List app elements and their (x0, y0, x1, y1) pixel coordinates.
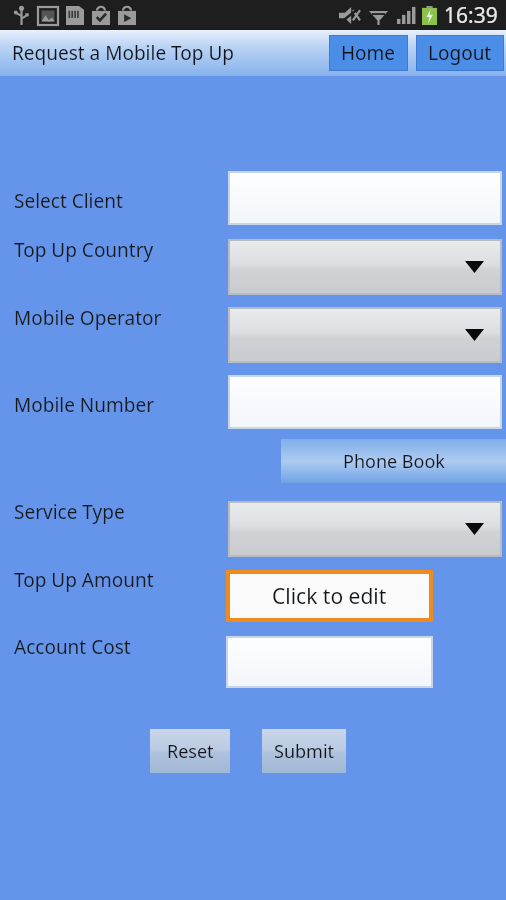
staticText: Phone Book (343, 449, 445, 474)
button[interactable]: Submit (262, 729, 346, 773)
button[interactable]: Home (329, 35, 408, 71)
staticText: Mobile Number (14, 392, 155, 418)
button[interactable]: Logout (416, 35, 504, 71)
staticText: Top Up Amount (14, 567, 154, 593)
button[interactable]: Phone Book (281, 439, 506, 483)
button[interactable] (228, 375, 502, 429)
button[interactable]: Reset (150, 729, 230, 773)
staticText: Home (341, 40, 396, 66)
staticText: Service Type (14, 499, 125, 525)
staticText: Reset (167, 739, 214, 764)
staticText: Select Client (14, 188, 123, 214)
staticText: Top Up Country (14, 237, 154, 263)
button[interactable] (226, 636, 433, 688)
staticText: Click to edit (272, 582, 387, 611)
staticText: Submit (274, 739, 335, 764)
staticText: 16:39 (444, 1, 498, 30)
button[interactable]: Dropdown (228, 239, 502, 295)
button[interactable]: Dropdown (228, 307, 502, 363)
button[interactable]: Click to edit (226, 570, 433, 622)
staticText: Mobile Operator (14, 305, 162, 331)
button[interactable] (228, 171, 502, 225)
staticText: Request a Mobile Top Up (12, 40, 234, 66)
staticText: Account Cost (14, 634, 131, 660)
button[interactable]: Dropdown (228, 501, 502, 557)
staticText: Logout (428, 40, 492, 66)
